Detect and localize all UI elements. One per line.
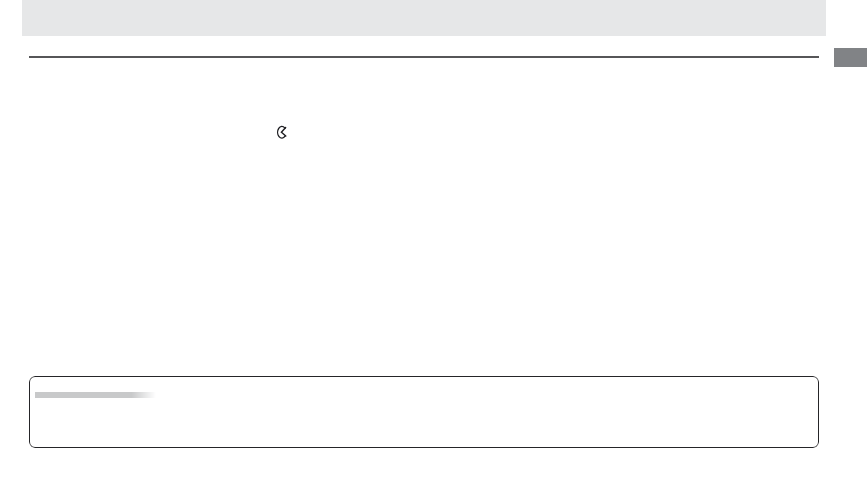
button[interactable]: Collapse [275, 124, 291, 140]
button[interactable]: Card [29, 376, 819, 448]
